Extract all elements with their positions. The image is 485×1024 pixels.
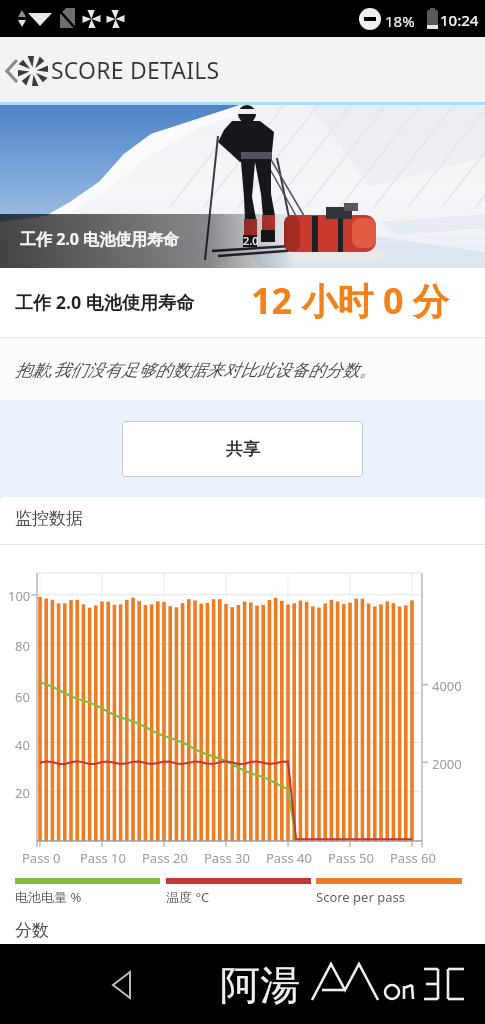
button[interactable]: SCORE DETAILS [0, 37, 485, 102]
staticText: 40 [15, 736, 30, 754]
staticText: 12 小时 0 分 [251, 276, 449, 325]
staticText: 共享 [226, 439, 260, 460]
staticText: 80 [15, 637, 30, 655]
staticText: Pass 0 [22, 849, 61, 867]
staticText: 60 [15, 688, 30, 706]
button[interactable]: 共享 [122, 421, 363, 477]
staticText: 分数 [15, 920, 49, 941]
staticText: Score per pass [316, 888, 405, 906]
staticText: Pass 10 [80, 849, 126, 867]
staticText: 4000 [432, 677, 462, 695]
staticText: 温度 °C [166, 888, 210, 906]
staticText: 阿湯 [220, 960, 300, 1010]
staticText: 18% [385, 11, 415, 31]
staticText: 抱歉,我们没有足够的数据来对比此设备的分数。 [15, 358, 377, 381]
staticText: Pass 30 [204, 849, 250, 867]
staticText: 2000 [432, 755, 462, 773]
staticText: Pass 40 [266, 849, 312, 867]
button[interactable] [0, 944, 485, 1024]
staticText: 工作 2.0 电池使用寿命 [15, 290, 195, 315]
staticText: Pass 50 [328, 849, 374, 867]
staticText: 2.0 [243, 233, 259, 248]
staticText: SCORE DETAILS [51, 54, 220, 85]
staticText: Pass 20 [142, 849, 188, 867]
staticText: Pass 60 [390, 849, 436, 867]
staticText: 20 [15, 784, 30, 802]
staticText: 工作 2.0 电池使用寿命 [20, 228, 180, 250]
staticText: 监控数据 [15, 508, 83, 529]
staticText: 电池电量 % [15, 888, 82, 906]
staticText: 10:24 [440, 10, 479, 30]
staticText: 100 [8, 587, 31, 605]
